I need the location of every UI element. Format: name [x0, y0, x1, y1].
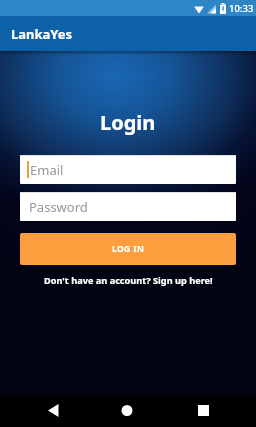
- button[interactable]: [42, 400, 64, 422]
- button[interactable]: Email: [20, 155, 236, 184]
- button[interactable]: [116, 400, 138, 422]
- button[interactable]: Password: [20, 192, 236, 221]
- button[interactable]: Don't have an account? Sign up here!: [44, 274, 213, 287]
- button[interactable]: [192, 400, 214, 422]
- staticText: Login: [100, 109, 156, 136]
- button[interactable]: LOG IN: [20, 233, 236, 265]
- staticText: LOG IN: [112, 243, 145, 255]
- staticText: Email: [30, 161, 64, 179]
- staticText: 10:33: [229, 2, 254, 15]
- staticText: LankaYes: [11, 25, 73, 43]
- staticText: Password: [29, 198, 88, 216]
